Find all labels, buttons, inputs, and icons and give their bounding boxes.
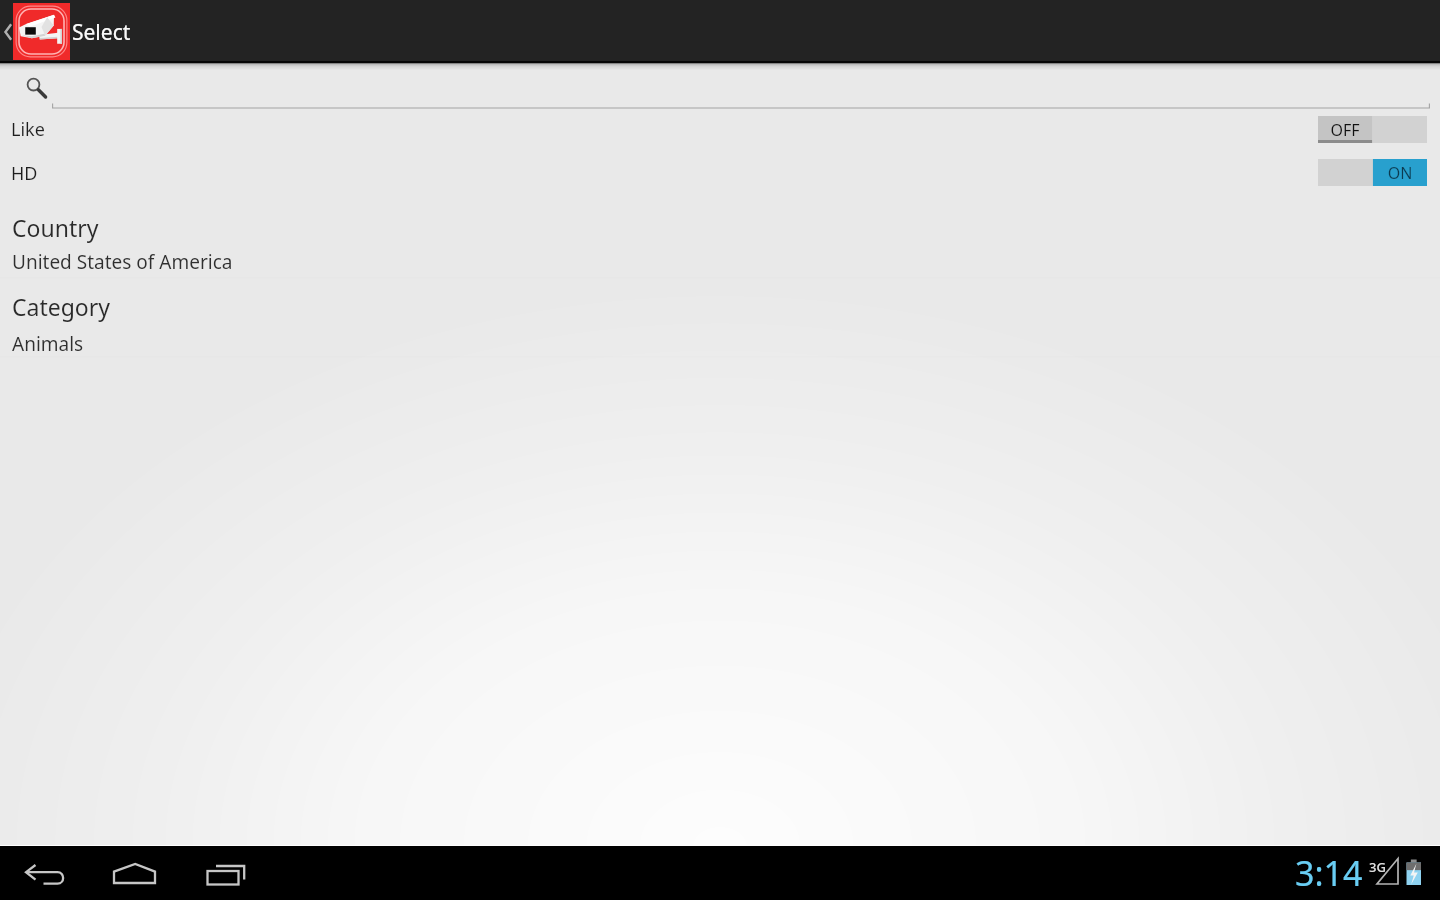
button[interactable]: Category xyxy=(0,285,1440,355)
button[interactable]: Back xyxy=(20,856,70,890)
button[interactable]: Home xyxy=(108,856,162,890)
button[interactable]: Like xyxy=(0,112,1440,154)
staticText: 3:14 xyxy=(1295,850,1363,896)
staticText: HD xyxy=(11,161,38,186)
button[interactable]: OFF xyxy=(1318,116,1427,143)
staticText: Animals xyxy=(12,331,84,357)
staticText: Like xyxy=(11,117,45,142)
staticText: OFF xyxy=(1318,119,1372,141)
button[interactable]: Recent apps xyxy=(200,856,254,890)
staticText: Select xyxy=(72,18,131,47)
button[interactable]: Select xyxy=(0,0,1440,63)
button[interactable] xyxy=(52,92,1430,112)
button[interactable]: HD xyxy=(0,156,1440,198)
staticText: United States of America xyxy=(12,249,233,275)
staticText: Country xyxy=(12,212,99,243)
button[interactable]: Search xyxy=(20,70,52,102)
button[interactable]: ON xyxy=(1318,159,1427,186)
staticText: Category xyxy=(12,291,111,322)
staticText: 3G xyxy=(1369,858,1386,876)
button[interactable]: Country xyxy=(0,206,1440,276)
staticText: ON xyxy=(1373,162,1427,184)
